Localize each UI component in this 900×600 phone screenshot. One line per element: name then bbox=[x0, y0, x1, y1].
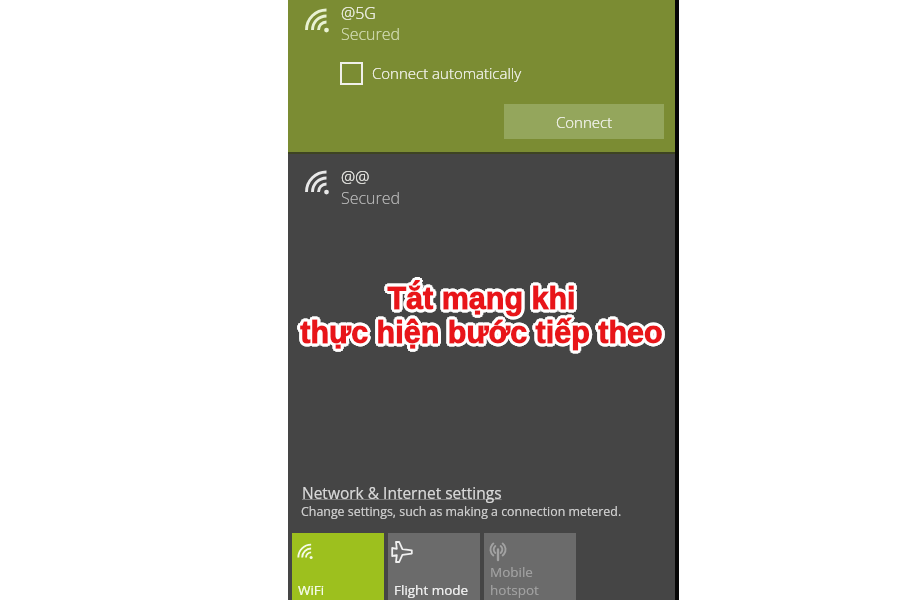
staticText: thực hiện bước tiếp theo bbox=[301, 315, 664, 349]
staticText: thực hiện bước tiếp theo bbox=[302, 313, 665, 347]
staticText: thực hiện bước tiếp theo bbox=[302, 314, 665, 348]
button[interactable]: Flight mode bbox=[388, 533, 480, 600]
staticText: Flight mode bbox=[394, 581, 469, 599]
staticText: thực hiện bước tiếp theo bbox=[302, 317, 665, 351]
staticText: Tắt mạng khi bbox=[385, 279, 574, 313]
staticText: Tắt mạng khi bbox=[388, 283, 577, 317]
staticText: thực hiện bước tiếp theo bbox=[300, 314, 663, 348]
button[interactable]: WiFi bbox=[292, 533, 384, 600]
staticText: thực hiện bước tiếp theo bbox=[302, 316, 665, 350]
staticText: Tắt mạng khi bbox=[385, 281, 574, 315]
staticText: thực hiện bước tiếp theo bbox=[300, 315, 663, 349]
staticText: Tắt mạng khi bbox=[386, 280, 575, 314]
button[interactable]: @5G bbox=[288, 0, 675, 153]
staticText: thực hiện bước tiếp theo bbox=[299, 315, 662, 349]
staticText: thực hiện bước tiếp theo bbox=[299, 316, 662, 350]
staticText: thực hiện bước tiếp theo bbox=[300, 316, 663, 350]
staticText: thực hiện bước tiếp theo bbox=[300, 317, 663, 351]
staticText: Connect automatically bbox=[372, 63, 522, 83]
staticText: Tắt mạng khi bbox=[389, 282, 578, 316]
staticText: Tắt mạng khi bbox=[387, 283, 576, 317]
staticText: Tắt mạng khi bbox=[388, 279, 577, 313]
staticText: Tắt mạng khi bbox=[386, 281, 575, 315]
button[interactable]: Connect automatically bbox=[340, 61, 522, 84]
staticText: Tắt mạng khi bbox=[387, 281, 576, 315]
staticText: thực hiện bước tiếp theo bbox=[301, 316, 664, 350]
staticText: thực hiện bước tiếp theo bbox=[298, 313, 661, 347]
staticText: Tắt mạng khi bbox=[387, 282, 576, 316]
staticText: Tắt mạng khi bbox=[389, 281, 578, 315]
staticText: Secured bbox=[341, 187, 401, 209]
staticText: Secured bbox=[341, 23, 401, 45]
staticText: thực hiện bước tiếp theo bbox=[299, 313, 662, 347]
staticText: Tắt mạng khi bbox=[386, 282, 575, 316]
staticText: Tắt mạng khi bbox=[385, 282, 574, 316]
staticText: thực hiện bước tiếp theo bbox=[297, 315, 660, 349]
staticText: Tắt mạng khi bbox=[387, 279, 576, 313]
staticText: Tắt mạng khi bbox=[389, 283, 578, 317]
staticText: Tắt mạng khi bbox=[388, 281, 577, 315]
staticText: Tắt mạng khi bbox=[384, 281, 573, 315]
staticText: thực hiện bước tiếp theo bbox=[300, 312, 663, 346]
staticText: thực hiện bước tiếp theo bbox=[301, 317, 664, 351]
staticText: Connect bbox=[556, 112, 613, 132]
staticText: Tắt mạng khi bbox=[387, 284, 576, 318]
button[interactable]: Network & Internet settings bbox=[302, 482, 502, 503]
staticText: thực hiện bước tiếp theo bbox=[299, 314, 662, 348]
staticText: Mobile hotspot bbox=[490, 563, 539, 599]
staticText: Change settings, such as making a connec… bbox=[301, 503, 622, 520]
staticText: thực hiện bước tiếp theo bbox=[300, 313, 663, 347]
staticText: Tắt mạng khi bbox=[387, 280, 576, 314]
button[interactable]: Mobile hotspot bbox=[484, 533, 576, 600]
staticText: thực hiện bước tiếp theo bbox=[301, 314, 664, 348]
staticText: Tắt mạng khi bbox=[389, 279, 578, 313]
staticText: Tắt mạng khi bbox=[389, 280, 578, 314]
staticText: thực hiện bước tiếp theo bbox=[298, 317, 661, 351]
button[interactable]: @@ bbox=[288, 159, 675, 217]
staticText: Tắt mạng khi bbox=[386, 283, 575, 317]
staticText: thực hiện bước tiếp theo bbox=[298, 316, 661, 350]
staticText: @@ bbox=[341, 166, 370, 188]
staticText: @5G bbox=[341, 2, 376, 24]
button[interactable]: Connect bbox=[504, 104, 664, 139]
staticText: Tắt mạng khi bbox=[385, 283, 574, 317]
staticText: thực hiện bước tiếp theo bbox=[300, 318, 663, 352]
staticText: Tắt mạng khi bbox=[386, 279, 575, 313]
staticText: thực hiện bước tiếp theo bbox=[298, 315, 661, 349]
staticText: thực hiện bước tiếp theo bbox=[303, 315, 666, 349]
staticText: Tắt mạng khi bbox=[385, 280, 574, 314]
staticText: thực hiện bước tiếp theo bbox=[298, 314, 661, 348]
staticText: Tắt mạng khi bbox=[388, 280, 577, 314]
staticText: thực hiện bước tiếp theo bbox=[301, 313, 664, 347]
staticText: Tắt mạng khi bbox=[390, 281, 579, 315]
staticText: Tắt mạng khi bbox=[388, 282, 577, 316]
staticText: thực hiện bước tiếp theo bbox=[299, 317, 662, 351]
staticText: thực hiện bước tiếp theo bbox=[302, 315, 665, 349]
staticText: WiFi bbox=[298, 581, 325, 599]
staticText: Tắt mạng khi bbox=[387, 278, 576, 312]
